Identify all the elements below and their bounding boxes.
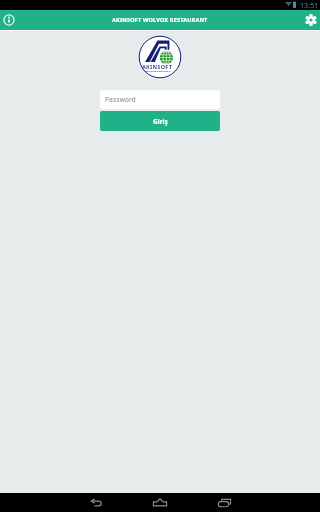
staticText: Giriş — [153, 117, 168, 126]
button[interactable]: Home — [134, 493, 186, 512]
button[interactable]: Settings — [301, 10, 320, 30]
staticText: AKINSOFT WOLVOX RESTAURANT — [112, 16, 208, 24]
button[interactable]: Password — [100, 90, 220, 109]
staticText: Password — [105, 95, 136, 104]
button[interactable]: Info — [0, 10, 18, 30]
staticText: 13:51 — [300, 0, 319, 10]
button[interactable]: Giriş — [100, 111, 220, 131]
staticText: AKINSOFT — [142, 63, 173, 71]
button[interactable]: Recent apps — [198, 493, 250, 512]
button[interactable]: Back — [70, 493, 122, 512]
